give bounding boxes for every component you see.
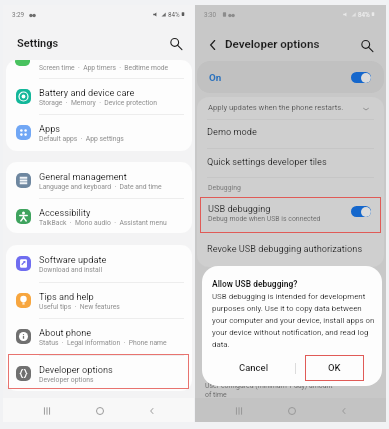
staticText: Accessibility [39, 207, 91, 218]
staticText: OK [328, 362, 341, 373]
staticText: Battery and device care [39, 87, 135, 98]
button[interactable]: Developer options [6, 355, 192, 391]
staticText: Default apps · App settings [39, 135, 124, 143]
button[interactable]: Back [142, 401, 162, 421]
staticText: Screen time · App timers · Bedtime mode [39, 64, 169, 72]
button[interactable]: Apps [6, 114, 192, 150]
staticText: 84% [358, 11, 370, 18]
button[interactable]: Home [282, 401, 302, 421]
staticText: About phone [39, 327, 92, 338]
staticText: Demo mode [207, 126, 257, 137]
staticText: Storage · Memory · Device protection [39, 99, 157, 107]
button[interactable]: Home [90, 401, 110, 421]
button[interactable]: USB debugging [197, 193, 384, 229]
staticText: On [209, 72, 222, 83]
staticText: Revoke USB debugging authorizations [207, 243, 363, 254]
staticText: Apply updates when the phone restarts. [208, 103, 344, 112]
button[interactable]: Quick settings developer tiles [197, 147, 384, 176]
staticText: General management [39, 171, 127, 182]
staticText: Software update [39, 254, 107, 265]
staticText: Cancel [239, 362, 269, 373]
button[interactable]: Toggle [351, 72, 371, 83]
staticText: Debug mode when USB is connected [208, 215, 321, 223]
button[interactable]: Cancel [206, 357, 302, 377]
button[interactable]: Recents [37, 401, 57, 421]
staticText: Settings [17, 37, 59, 50]
button[interactable]: Back [334, 401, 354, 421]
staticText: Useful tips · New features [39, 303, 120, 311]
button[interactable]: Accessibility [6, 198, 192, 233]
button[interactable]: Toggle [351, 206, 371, 217]
staticText: Apps [39, 123, 61, 134]
button[interactable]: About phone [6, 318, 192, 354]
staticText: Download and install [39, 266, 103, 274]
staticText: Developer options [39, 364, 113, 375]
staticText: Debugging [208, 184, 241, 192]
staticText: 84% [168, 11, 180, 18]
staticText: 3:30 [204, 11, 217, 18]
staticText: Language and keyboard · Date and time [39, 183, 162, 191]
button[interactable]: Recents [229, 401, 249, 421]
staticText: Allow USB debugging? [212, 279, 298, 289]
staticText: 3:29 [12, 11, 25, 18]
button[interactable]: OK [295, 357, 373, 377]
staticText: User-configured (minimum 1 day) amount [205, 382, 333, 390]
button[interactable]: On [197, 61, 384, 93]
staticText: USB debugging [208, 203, 271, 214]
button[interactable]: Screen time · App timers · Bedtime mode [6, 60, 192, 78]
staticText: USB debugging is intended for developmen… [212, 292, 378, 349]
staticText: Developer options [39, 376, 94, 384]
button[interactable]: Back [206, 38, 220, 52]
button[interactable]: General management [6, 162, 192, 198]
staticText: of time [205, 391, 227, 399]
staticText: Developer options [225, 37, 320, 51]
button[interactable]: Battery and device care [6, 78, 192, 114]
staticText: TalkBack · Mono audio · Assistant menu [39, 219, 167, 227]
button[interactable]: Demo mode [197, 117, 384, 146]
button[interactable]: Search [360, 39, 373, 52]
staticText: Status · Legal information · Phone name [39, 339, 167, 347]
button[interactable]: Revoke USB debugging authorizations [197, 234, 384, 263]
button[interactable]: Software update [6, 245, 192, 281]
staticText: Tips and help [39, 291, 94, 302]
button[interactable]: Search [169, 37, 182, 50]
staticText: Quick settings developer tiles [207, 156, 327, 167]
button[interactable]: Tips and help [6, 282, 192, 318]
